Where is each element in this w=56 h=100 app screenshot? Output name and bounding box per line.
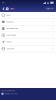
staticText: Contact [6,41,11,43]
button[interactable]: About [0,12,56,19]
button[interactable]: Language [0,45,56,52]
button[interactable]: Privacy Policy [0,32,56,39]
staticText: Privacy Policy [6,34,16,36]
button[interactable]: Settings [6,6,15,12]
staticText: Language [6,48,14,50]
staticText: © 2024 Company Inc. [1,90,15,92]
button[interactable]: Contact [0,39,56,45]
staticText: Terms of Service [6,28,18,29]
staticText: All rights reserved [4,93,17,95]
button[interactable]: Language [44,7,54,11]
button[interactable]: Terms of Service [0,25,56,32]
button[interactable]: Back [1,6,6,12]
staticText: 9:41 [2,2,5,4]
staticText: About [6,14,10,16]
staticText: Feedback [6,21,14,23]
button[interactable]: Feedback [0,19,56,25]
staticText: English [46,8,51,10]
staticText: Settings [10,8,15,10]
